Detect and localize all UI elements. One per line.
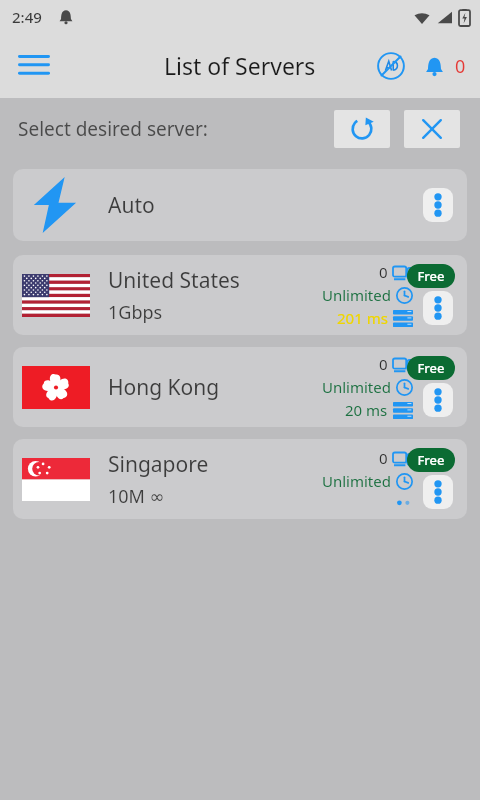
- staticText: 0: [379, 448, 388, 468]
- staticText: 1Gbps: [108, 300, 163, 325]
- button[interactable]: Free: [407, 448, 455, 472]
- staticText: 10M ∞: [108, 484, 165, 509]
- staticText: Free: [417, 267, 445, 285]
- staticText: List of Servers: [164, 50, 316, 81]
- staticText: 0: [379, 262, 388, 282]
- staticText: United States: [108, 266, 240, 295]
- button[interactable]: Hong Kong: [13, 347, 467, 427]
- button[interactable]: Singapore: [13, 439, 467, 519]
- staticText: Free: [417, 359, 445, 377]
- button[interactable]: Free: [407, 264, 455, 288]
- button[interactable]: Open navigation menu: [10, 42, 58, 90]
- button[interactable]: More options: [423, 383, 453, 417]
- button[interactable]: Free: [407, 356, 455, 380]
- staticText: 0: [379, 354, 388, 374]
- button[interactable]: More options: [423, 188, 453, 222]
- staticText: Select desired server:: [18, 116, 208, 142]
- staticText: Unlimited: [322, 471, 391, 491]
- button[interactable]: Notifications: [413, 45, 455, 87]
- button[interactable]: Refresh server list: [334, 110, 390, 148]
- button[interactable]: United States: [13, 255, 467, 335]
- staticText: 20 ms: [345, 400, 388, 420]
- button[interactable]: Close: [404, 110, 460, 148]
- button[interactable]: Auto: [13, 169, 467, 241]
- staticText: Singapore: [108, 450, 209, 479]
- button[interactable]: More options: [423, 475, 453, 509]
- staticText: Unlimited: [322, 377, 391, 397]
- button[interactable]: More options: [423, 291, 453, 325]
- button[interactable]: Remove ads: [369, 44, 413, 88]
- staticText: Auto: [108, 191, 155, 220]
- staticText: 0: [455, 54, 466, 79]
- staticText: Unlimited: [322, 285, 391, 305]
- staticText: Free: [417, 451, 445, 469]
- staticText: Hong Kong: [108, 373, 220, 402]
- staticText: 2:49: [12, 7, 42, 27]
- staticText: 201 ms: [337, 308, 388, 328]
